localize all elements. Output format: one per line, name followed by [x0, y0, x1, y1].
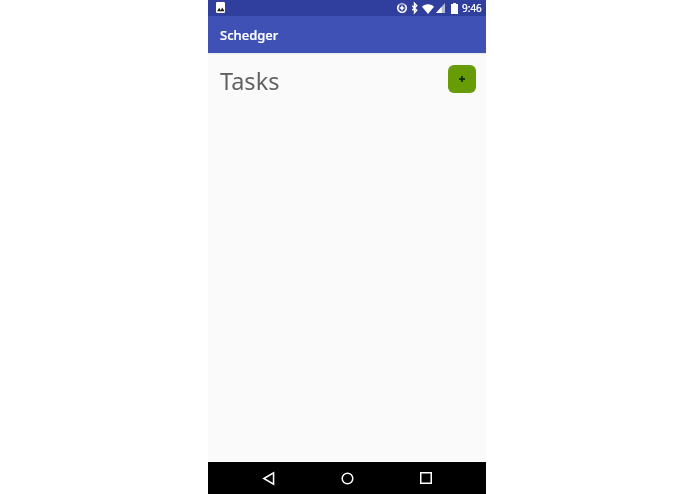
button[interactable]: Home [331, 462, 363, 494]
button[interactable]: Back [253, 462, 285, 494]
staticText: 9:46 [462, 1, 482, 15]
button[interactable]: Recent apps [410, 462, 442, 494]
button[interactable]: Add task [448, 65, 476, 93]
staticText: Tasks [220, 65, 280, 97]
staticText: Schedger [220, 26, 279, 44]
